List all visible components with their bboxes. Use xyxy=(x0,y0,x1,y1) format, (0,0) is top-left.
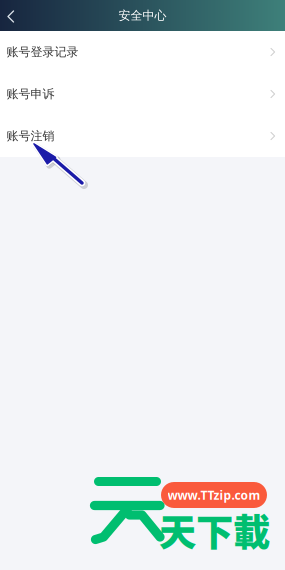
staticText: 安全中心 xyxy=(118,8,166,23)
staticText: 账号登录记录 xyxy=(6,45,78,59)
staticText: 账号注销 xyxy=(6,129,54,143)
staticText: 天下載 xyxy=(159,503,270,557)
button[interactable]: 账号注销 xyxy=(0,115,285,157)
button[interactable]: 账号申诉 xyxy=(0,73,285,115)
button[interactable]: 账号登录记录 xyxy=(0,31,285,73)
button[interactable]: Back xyxy=(0,0,30,31)
staticText: 账号申诉 xyxy=(6,87,54,101)
staticText: www.TTzip.com xyxy=(167,487,260,503)
